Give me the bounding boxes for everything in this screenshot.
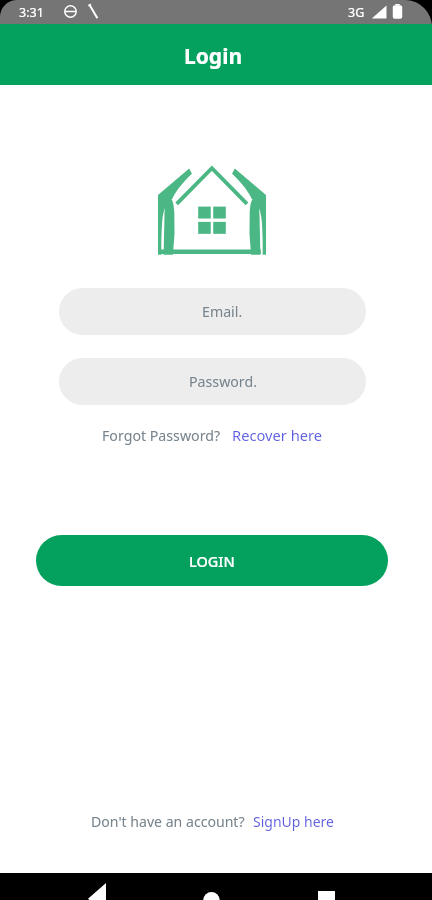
staticText: LOGIN bbox=[189, 551, 235, 571]
button[interactable]: Recent apps bbox=[303, 875, 349, 900]
button[interactable]: LOGIN bbox=[36, 535, 388, 586]
button[interactable]: Recover here bbox=[232, 425, 323, 445]
button[interactable]: Password. bbox=[59, 358, 366, 405]
button[interactable]: Back bbox=[81, 875, 127, 900]
staticText: SignUp here bbox=[253, 812, 334, 831]
staticText: Forgot Password? bbox=[102, 426, 221, 445]
staticText: 3:31 bbox=[19, 4, 44, 21]
staticText: Recover here bbox=[232, 425, 323, 445]
staticText: Password. bbox=[189, 372, 257, 391]
button[interactable]: SignUp here bbox=[253, 812, 334, 831]
button[interactable]: Home bbox=[189, 875, 235, 900]
staticText: Email. bbox=[202, 302, 243, 321]
staticText: 3G bbox=[348, 4, 365, 21]
staticText: Login bbox=[184, 42, 243, 71]
button[interactable]: Email. bbox=[59, 288, 366, 335]
staticText: Don't have an account? bbox=[91, 812, 245, 831]
